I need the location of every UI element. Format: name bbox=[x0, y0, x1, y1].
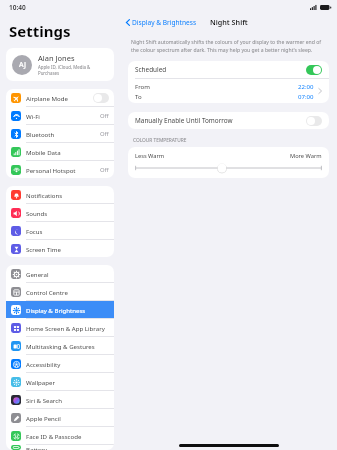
staticText: Night Shift automatically shifts the col… bbox=[131, 39, 326, 53]
staticText: AJ bbox=[19, 60, 26, 70]
button[interactable]: Airplane Mode bbox=[6, 89, 114, 106]
button[interactable]: Battery bbox=[6, 445, 114, 450]
staticText: Bluetooth bbox=[26, 130, 100, 138]
staticText: Airplane Mode bbox=[26, 94, 93, 102]
staticText: Wi-Fi bbox=[26, 112, 100, 120]
button[interactable]: Colour temperature slider bbox=[135, 163, 322, 173]
button[interactable]: AJ bbox=[6, 48, 114, 81]
button[interactable]: Bluetooth bbox=[6, 125, 114, 142]
staticText: Alan Jones bbox=[38, 53, 75, 63]
button[interactable]: Home Screen & App Library bbox=[6, 319, 114, 336]
button[interactable]: Accessibility bbox=[6, 355, 114, 372]
staticText: Settings bbox=[9, 21, 71, 41]
staticText: Siri & Search bbox=[26, 396, 109, 404]
staticText: Personal Hotspot bbox=[26, 166, 100, 174]
button[interactable]: Face ID & Passcode bbox=[6, 427, 114, 444]
staticText: Home Screen & App Library bbox=[26, 324, 109, 332]
staticText: Scheduled bbox=[135, 65, 306, 74]
staticText: Apple Pencil bbox=[26, 414, 109, 422]
button[interactable]: General bbox=[6, 265, 114, 282]
button[interactable]: Toggle off bbox=[93, 93, 109, 103]
staticText: Accessibility bbox=[26, 360, 109, 368]
staticText: General bbox=[26, 270, 109, 278]
button[interactable]: Manually Enable Until Tomorrow bbox=[128, 112, 329, 129]
button[interactable]: Screen Time bbox=[6, 240, 114, 257]
staticText: Wallpaper bbox=[26, 378, 109, 386]
button[interactable]: Wi-Fi bbox=[6, 107, 114, 124]
staticText: Off bbox=[100, 130, 109, 138]
button[interactable]: Toggle off bbox=[306, 116, 322, 126]
staticText: Off bbox=[100, 112, 109, 120]
button[interactable]: Mobile Data bbox=[6, 143, 114, 160]
staticText: 07:00 bbox=[298, 92, 314, 100]
staticText: Notifications bbox=[26, 191, 109, 199]
staticText: Focus bbox=[26, 227, 109, 235]
button[interactable]: Toggle on bbox=[306, 65, 322, 75]
button[interactable]: Control Centre bbox=[6, 283, 114, 300]
staticText: COLOUR TEMPERATURE bbox=[133, 137, 187, 144]
staticText: Battery bbox=[26, 445, 109, 450]
button[interactable]: From bbox=[128, 79, 329, 103]
staticText: From bbox=[135, 82, 150, 90]
staticText: Less Warm bbox=[135, 152, 165, 160]
button[interactable]: Display & Brightness bbox=[6, 301, 114, 318]
button[interactable]: Multitasking & Gestures bbox=[6, 337, 114, 354]
staticText: 10:40 bbox=[9, 3, 26, 12]
button[interactable]: Personal Hotspot bbox=[6, 161, 114, 178]
button[interactable]: Scheduled bbox=[128, 61, 329, 78]
button[interactable]: Notifications bbox=[6, 186, 114, 203]
staticText: To bbox=[135, 92, 142, 100]
button[interactable]: Sounds bbox=[6, 204, 114, 221]
staticText: Night Shift bbox=[210, 17, 248, 27]
staticText: Apple ID, iCloud, Media & Purchases bbox=[38, 64, 108, 76]
staticText: Sounds bbox=[26, 209, 109, 217]
staticText: Off bbox=[100, 166, 109, 174]
staticText: Mobile Data bbox=[26, 148, 109, 156]
staticText: Control Centre bbox=[26, 288, 109, 296]
staticText: Display & Brightness bbox=[132, 18, 197, 27]
staticText: More Warm bbox=[290, 152, 322, 160]
staticText: Manually Enable Until Tomorrow bbox=[135, 116, 306, 125]
button[interactable]: Apple Pencil bbox=[6, 409, 114, 426]
staticText: Display & Brightness bbox=[26, 306, 109, 314]
staticText: 22:00 bbox=[298, 82, 314, 90]
staticText: Face ID & Passcode bbox=[26, 432, 109, 440]
button[interactable]: Focus bbox=[6, 222, 114, 239]
staticText: Screen Time bbox=[26, 245, 109, 253]
button[interactable]: Siri & Search bbox=[6, 391, 114, 408]
staticText: Multitasking & Gestures bbox=[26, 342, 109, 350]
button[interactable]: Wallpaper bbox=[6, 373, 114, 390]
button[interactable]: Display & Brightness bbox=[120, 16, 201, 29]
